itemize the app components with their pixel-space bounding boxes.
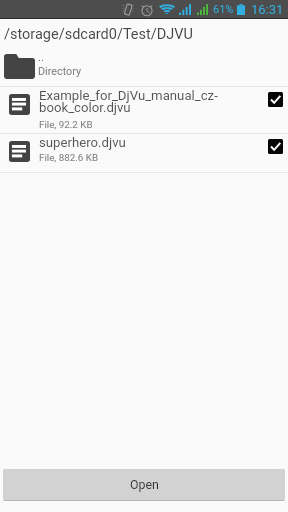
staticText: Directory: [38, 65, 82, 78]
staticText: 16:31: [251, 2, 284, 17]
staticText: Example_for_DjVu_manual_cz-: [39, 88, 218, 103]
button[interactable]: superhero.djvu: [0, 134, 288, 172]
button[interactable]: Select file: [265, 89, 285, 109]
staticText: book_color.djvu: [39, 100, 131, 115]
staticText: Open: [130, 477, 159, 492]
button[interactable]: Example_for_DjVu_manual_cz-: [0, 87, 288, 133]
staticText: 61%: [213, 3, 234, 16]
staticText: File, 882.6 KB: [39, 152, 99, 163]
staticText: /storage/sdcard0/Test/DJVU: [4, 26, 193, 43]
button[interactable]: Select file: [265, 136, 285, 156]
staticText: superhero.djvu: [39, 135, 126, 150]
button[interactable]: ..: [0, 48, 288, 86]
button[interactable]: Open: [3, 469, 285, 501]
staticText: File, 92.2 KB: [39, 119, 93, 130]
staticText: ..: [38, 51, 44, 64]
